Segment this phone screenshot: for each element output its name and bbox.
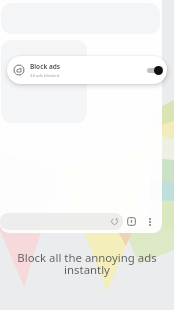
button[interactable]: Block ads toggle xyxy=(146,65,163,75)
button[interactable]: Block ads xyxy=(7,56,167,84)
button[interactable]: Reload xyxy=(107,214,122,229)
button[interactable]: Tabs xyxy=(124,214,139,229)
button[interactable]: More options xyxy=(142,214,157,229)
staticText: 34 ads blocked xyxy=(30,73,60,79)
button[interactable] xyxy=(0,213,123,230)
staticText: instantly xyxy=(64,262,110,278)
staticText: Block all the annoying ads xyxy=(17,250,157,266)
staticText: Block ads xyxy=(30,62,60,71)
